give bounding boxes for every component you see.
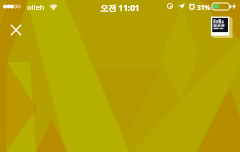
staticText: 31%: [197, 3, 211, 12]
button[interactable]: Close: [2, 16, 30, 44]
staticText: 오전 11:01: [100, 2, 140, 13]
button[interactable]: Photo thumbnail: [210, 15, 236, 41]
staticText: olleh: [27, 2, 45, 12]
